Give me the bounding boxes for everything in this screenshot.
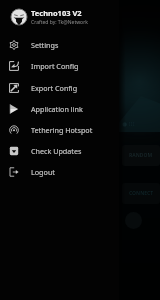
button[interactable]: CONNECT bbox=[122, 183, 160, 204]
staticText: Check Updates bbox=[31, 146, 82, 156]
button[interactable]: Techno103 V2 bbox=[0, 0, 119, 34]
staticText: CONNECT bbox=[129, 190, 154, 197]
staticText: Import Config bbox=[31, 61, 79, 71]
staticText: Crafted by: Tk@Network bbox=[31, 19, 88, 26]
staticText: Export Config bbox=[31, 83, 78, 93]
staticText: Logout bbox=[31, 167, 55, 177]
staticText: Tethering Hotspot bbox=[31, 125, 93, 135]
button[interactable]: Power bbox=[125, 212, 142, 229]
button[interactable]: Logout bbox=[0, 161, 119, 182]
staticText: Settings bbox=[31, 40, 59, 50]
staticText: RANDOM bbox=[129, 152, 153, 159]
staticText: ● III bbox=[122, 120, 135, 128]
button[interactable]: Import Config bbox=[0, 55, 119, 77]
button[interactable]: Tethering Hotspot bbox=[0, 119, 119, 140]
button[interactable]: RANDOM bbox=[122, 145, 160, 166]
button[interactable]: Settings bbox=[0, 34, 119, 55]
button[interactable]: Check Updates bbox=[0, 140, 119, 161]
button[interactable]: Export Config bbox=[0, 77, 119, 98]
staticText: Techno103 V2 bbox=[31, 8, 82, 18]
staticText: Application link bbox=[31, 104, 83, 114]
button[interactable]: Application link bbox=[0, 98, 119, 119]
